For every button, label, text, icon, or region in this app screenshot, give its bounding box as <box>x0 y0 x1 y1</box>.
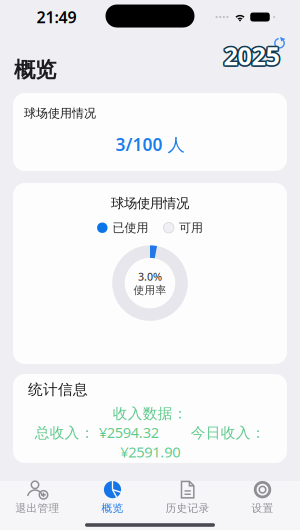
button[interactable]: 退出管理 <box>0 478 75 515</box>
staticText: 球场使用情况 <box>111 195 189 211</box>
staticText: 2025 <box>223 40 279 74</box>
staticText: 已使用 <box>112 220 148 235</box>
staticText: 概览 <box>101 502 123 515</box>
staticText: 3/100 人 <box>115 133 184 156</box>
staticText: 2025 <box>223 37 279 71</box>
staticText: 可用 <box>179 220 203 235</box>
staticText: 球场使用情况 <box>24 106 96 121</box>
staticText: 历史记录 <box>165 502 209 515</box>
staticText: 退出管理 <box>15 502 59 515</box>
staticText: 2025 <box>223 39 279 72</box>
staticText: 收入数据： 总收入： ¥2594.32 今日收入： ¥2591.90 <box>34 404 265 461</box>
staticText: 统计信息 <box>28 380 88 398</box>
button[interactable]: Year 2025, refresh <box>225 37 286 66</box>
staticText: 设置 <box>251 502 273 515</box>
staticText: 2025 <box>222 39 278 72</box>
staticText: 3.0% <box>138 269 162 284</box>
staticText: 2025 <box>222 37 278 71</box>
button[interactable]: 历史记录 <box>150 478 225 515</box>
staticText: 2025 <box>225 40 281 73</box>
staticText: 使用率 <box>133 284 166 297</box>
staticText: 21:49 <box>36 6 76 28</box>
staticText: 2025 <box>222 40 278 73</box>
button[interactable]: 设置 <box>225 478 300 515</box>
staticText: 概览 <box>14 57 56 83</box>
staticText: 2025 <box>225 39 281 72</box>
button[interactable]: 概览 <box>75 478 150 515</box>
staticText: 2025 <box>225 37 281 71</box>
